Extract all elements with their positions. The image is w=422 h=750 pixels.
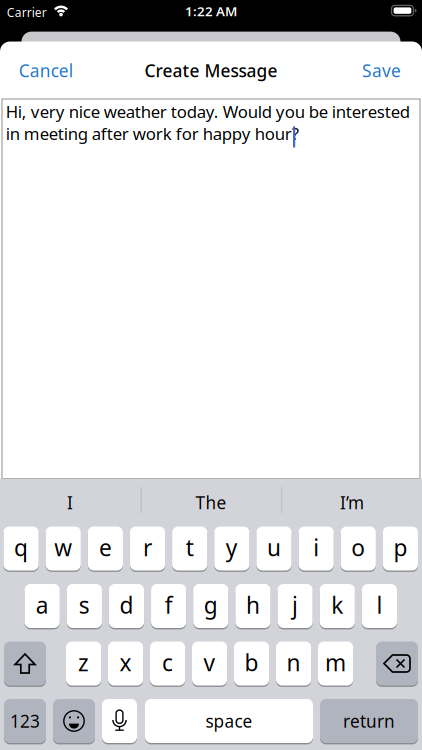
staticText: m [325,647,346,677]
staticText: t [186,532,194,562]
staticText: in meeting after work for happy hour? [6,122,299,145]
button[interactable]: k [320,584,355,628]
button[interactable]: y [214,526,249,570]
button[interactable]: The [142,479,280,526]
button[interactable]: z [66,641,101,685]
staticText: f [165,590,173,620]
button[interactable] [376,641,418,685]
button[interactable]: return [320,699,418,743]
staticText: h [246,590,260,620]
button[interactable]: v [192,641,227,685]
button[interactable]: m [318,641,353,685]
button[interactable]: j [277,584,313,628]
button[interactable]: n [276,641,311,685]
staticText: Cancel [19,59,73,82]
button[interactable]: o [341,526,376,570]
staticText: p [393,532,407,562]
staticText: 1:22 AM [185,2,237,20]
button[interactable]: Save [362,59,401,82]
button[interactable]: q [3,526,39,570]
staticText: return [343,709,395,733]
staticText: z [78,647,89,677]
staticText: i [313,532,319,562]
button[interactable]: d [109,584,144,628]
button[interactable]: space [145,699,313,743]
button[interactable]: r [130,526,165,570]
button[interactable] [102,699,137,743]
staticText: 123 [10,709,40,733]
staticText: s [79,590,90,620]
button[interactable]: a [25,584,60,628]
staticText: n [287,647,301,677]
staticText: Create Message [144,59,277,82]
staticText: w [54,532,72,562]
staticText: space [205,709,252,733]
staticText: r [143,532,152,562]
button[interactable] [4,641,46,685]
staticText: j [292,590,298,620]
staticText: The [195,491,226,514]
button[interactable]: h [235,584,271,628]
staticText: I’m [340,491,364,514]
staticText: b [245,647,259,677]
button[interactable]: f [151,584,186,628]
button[interactable]: I’m [283,479,421,526]
staticText: a [36,590,49,620]
staticText: Carrier [7,4,47,20]
button[interactable]: s [67,584,102,628]
staticText: v [204,647,216,677]
staticText: q [14,532,28,562]
button[interactable]: x [108,641,143,685]
button[interactable]: i [299,526,334,570]
staticText: Hi, very nice weather today. Would you b… [6,100,410,123]
staticText: e [99,532,112,562]
staticText: c [162,647,173,677]
button[interactable]: u [256,526,292,570]
staticText: Save [362,59,401,82]
staticText: I [67,491,73,514]
staticText: x [120,647,132,677]
button[interactable]: l [362,584,397,628]
button[interactable]: e [88,526,123,570]
staticText: u [267,532,281,562]
button[interactable]: c [150,641,185,685]
button[interactable] [53,699,95,743]
staticText: y [226,532,238,562]
staticText: d [119,590,133,620]
button[interactable]: t [172,526,207,570]
button[interactable]: w [46,526,81,570]
button[interactable]: I [1,479,139,526]
staticText: g [204,590,218,620]
staticText: o [351,532,365,562]
button[interactable]: p [383,526,418,570]
button[interactable]: Cancel [19,59,73,82]
staticText: l [376,590,382,620]
button[interactable]: 123 [4,699,46,743]
button[interactable]: g [193,584,228,628]
staticText: k [331,590,343,620]
button[interactable]: b [234,641,269,685]
